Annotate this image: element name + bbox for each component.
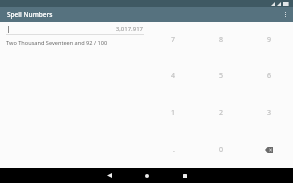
staticText: 2 bbox=[219, 108, 224, 118]
button[interactable]: Recent apps bbox=[166, 168, 204, 183]
button[interactable]: More options bbox=[277, 7, 293, 22]
staticText: 7 bbox=[171, 35, 176, 45]
button[interactable]: 8 bbox=[197, 22, 245, 58]
button[interactable]: 9 bbox=[245, 22, 293, 58]
button[interactable]: 5 bbox=[197, 58, 245, 94]
staticText: 3 bbox=[267, 108, 272, 118]
button[interactable]: 3,017.917 bbox=[6, 24, 144, 34]
staticText: 0 bbox=[219, 145, 224, 155]
staticText: 1 bbox=[171, 108, 176, 118]
button[interactable]: Backspace bbox=[245, 131, 293, 168]
button[interactable]: Home bbox=[128, 168, 166, 183]
staticText: . bbox=[173, 145, 175, 155]
staticText: 4 bbox=[171, 71, 176, 81]
staticText: 5 bbox=[219, 71, 224, 81]
staticText: 6 bbox=[267, 71, 272, 81]
button[interactable]: 0 bbox=[197, 131, 245, 168]
button[interactable]: Back bbox=[90, 168, 128, 183]
staticText: Two Thousand Seventeen and 92 / 100 bbox=[6, 39, 144, 47]
button[interactable]: 3 bbox=[245, 94, 293, 131]
button[interactable]: 6 bbox=[245, 58, 293, 94]
button[interactable]: 4 bbox=[150, 58, 197, 94]
staticText: 9 bbox=[267, 35, 272, 45]
staticText: Spell Numbers bbox=[7, 10, 53, 19]
staticText: 3,017.917 bbox=[6, 25, 143, 33]
button[interactable]: 2 bbox=[197, 94, 245, 131]
staticText: 8 bbox=[219, 35, 224, 45]
